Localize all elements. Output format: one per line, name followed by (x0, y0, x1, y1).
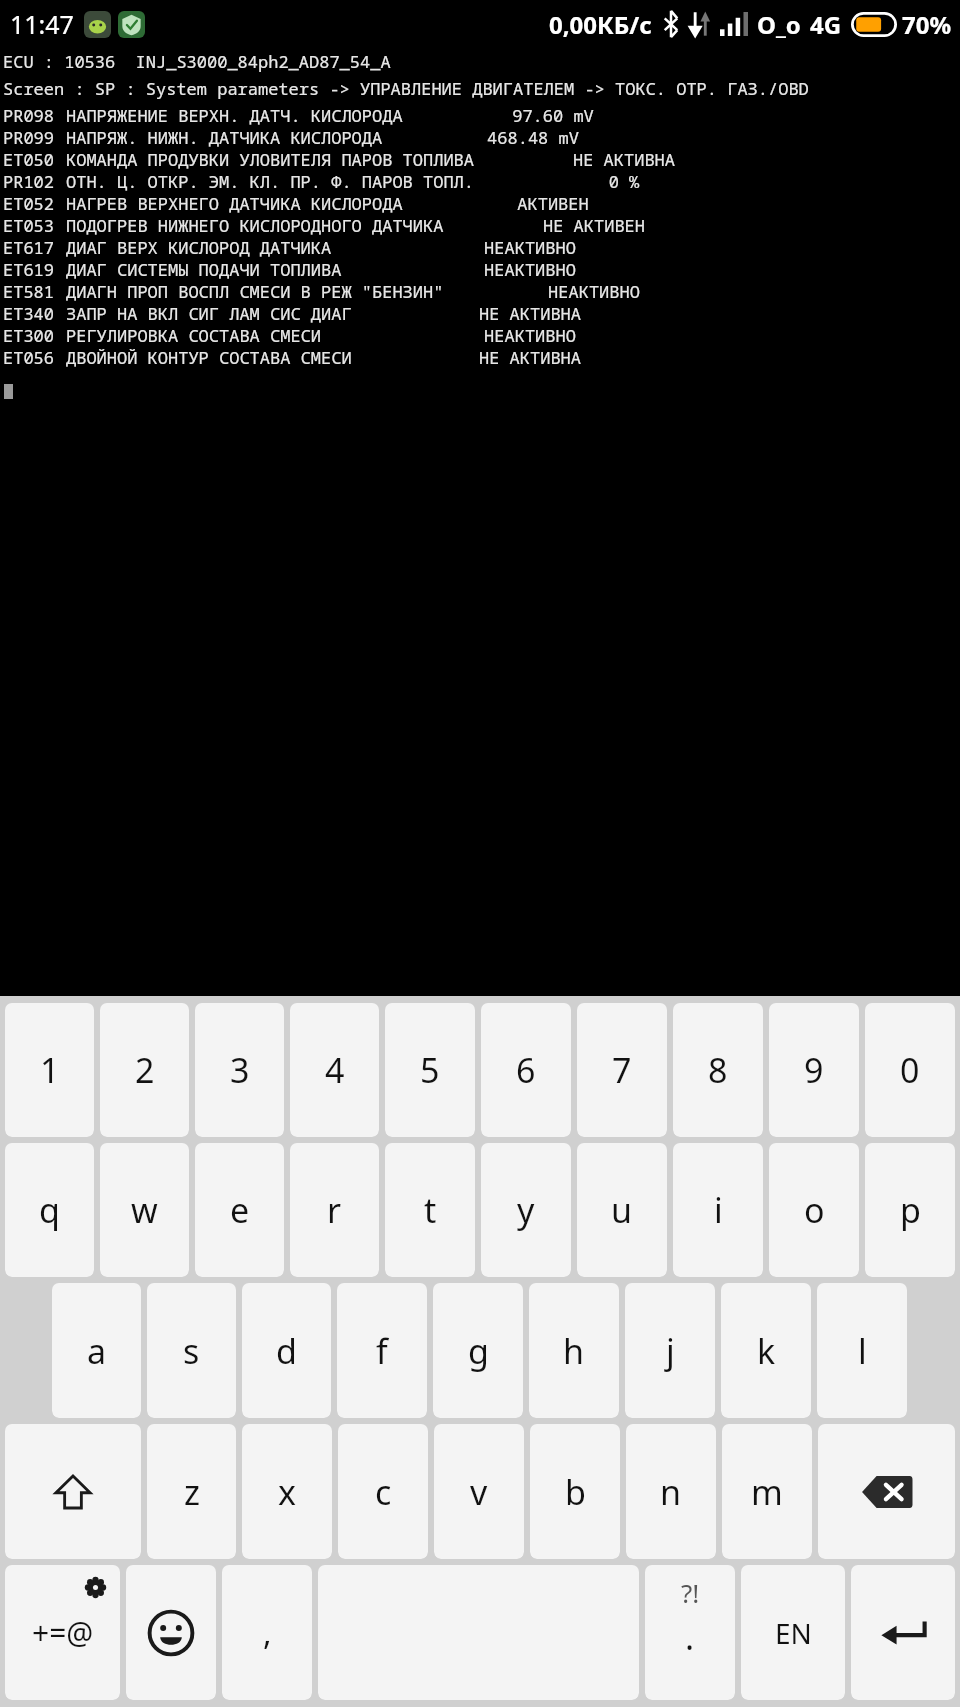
staticText: o (804, 1187, 825, 1233)
button[interactable] (5, 1424, 141, 1559)
button[interactable] (818, 1424, 955, 1559)
button[interactable]: y (481, 1143, 571, 1277)
button[interactable]: 8 (673, 1003, 763, 1137)
staticText: 11:47 (10, 7, 74, 41)
button[interactable]: i (673, 1143, 763, 1277)
staticText: 3 (230, 1047, 250, 1093)
staticText: 8 (708, 1047, 728, 1093)
button[interactable]: p (865, 1143, 955, 1277)
button[interactable]: f (337, 1283, 427, 1418)
other: Enter (848, 1562, 958, 1703)
button[interactable]: l (817, 1283, 907, 1418)
staticText: НАПРЯЖЕНИЕ ВЕРХН. ДАТЧ. КИСЛОРОДА (66, 104, 403, 126)
staticText: s (183, 1328, 200, 1374)
button[interactable]: b (530, 1424, 620, 1559)
button[interactable]: k (721, 1283, 811, 1418)
staticText: ДИАГ СИСТЕМЫ ПОДАЧИ ТОПЛИВА (66, 258, 342, 280)
button[interactable]: d (242, 1283, 331, 1418)
button[interactable]: , (222, 1565, 312, 1700)
staticText: w (131, 1187, 158, 1233)
button[interactable]: e (195, 1143, 284, 1277)
button[interactable]: 4 (290, 1003, 379, 1137)
button[interactable]: q (5, 1143, 94, 1277)
button[interactable] (126, 1565, 216, 1700)
button[interactable]: 1 (5, 1003, 94, 1137)
button[interactable]: n (626, 1424, 716, 1559)
staticText: 0 % (474, 170, 774, 192)
staticText: ECU : 10536 INJ_S3000_84ph2_AD87_54_A (3, 50, 391, 73)
staticText: PR099 (3, 126, 54, 148)
staticText: 97.60 mV (403, 104, 703, 126)
button[interactable]: 5 (385, 1003, 475, 1137)
staticText: ET056 (3, 346, 54, 368)
staticText: ЗАПР НА ВКЛ СИГ ЛАМ СИС ДИАГ (66, 302, 352, 324)
staticText: p (900, 1187, 921, 1233)
staticText: 5 (420, 1047, 440, 1093)
staticText: ET581 (3, 280, 54, 302)
button[interactable] (851, 1565, 955, 1700)
staticText: РЕГУЛИРОВКА СОСТАВА СМЕСИ (66, 324, 321, 346)
button[interactable]: c (338, 1424, 428, 1559)
staticText: ДИАГН ПРОП ВОСПЛ СМЕСИ В РЕЖ "БЕНЗИН" (66, 280, 444, 302)
staticText: ПОДОГРЕВ НИЖНЕГО КИСЛОРОДНОГО ДАТЧИКА (66, 214, 444, 236)
button[interactable]: j (625, 1283, 715, 1418)
staticText: ET340 (3, 302, 54, 324)
staticText: ET619 (3, 258, 54, 280)
button[interactable]: z (147, 1424, 236, 1559)
other: Space (315, 1562, 642, 1703)
button[interactable]: s (147, 1283, 236, 1418)
staticText: ET300 (3, 324, 54, 346)
staticText: ОТН. Ц. ОТКР. ЭМ. КЛ. ПР. Ф. ПАРОВ ТОПЛ. (66, 170, 474, 192)
button[interactable]: a (52, 1283, 141, 1418)
button[interactable]: o (769, 1143, 859, 1277)
button[interactable]: ?! (645, 1565, 735, 1700)
staticText: НАПРЯЖ. НИЖН. ДАТЧИКА КИСЛОРОДА (66, 126, 383, 148)
staticText: y (517, 1187, 535, 1233)
button[interactable]: 0 (865, 1003, 955, 1137)
staticText: c (375, 1469, 392, 1515)
button[interactable]: u (577, 1143, 667, 1277)
button[interactable]: g (433, 1283, 523, 1418)
staticText: z (184, 1469, 200, 1515)
other: Symbols (2, 1562, 123, 1703)
staticText: 9 (804, 1047, 824, 1093)
staticText: 0 (900, 1047, 920, 1093)
staticText: t (424, 1187, 437, 1233)
button[interactable]: h (529, 1283, 619, 1418)
staticText: a (87, 1328, 107, 1374)
staticText: ET050 (3, 148, 54, 170)
staticText: i (714, 1187, 723, 1233)
button[interactable]: t (385, 1143, 475, 1277)
staticText: 468.48 mV (383, 126, 683, 148)
button[interactable]: r (290, 1143, 379, 1277)
staticText: НЕАКТИВНО (444, 280, 744, 302)
button[interactable]: v (434, 1424, 524, 1559)
staticText: PR102 (3, 170, 54, 192)
button[interactable]: w (100, 1143, 189, 1277)
staticText: h (563, 1328, 585, 1374)
staticText: 4 (325, 1047, 345, 1093)
staticText: d (276, 1328, 297, 1374)
button[interactable]: +=@ (5, 1565, 120, 1700)
staticText: Screen : SP : System parameters -> УПРАВ… (3, 77, 809, 100)
staticText: КОМАНДА ПРОДУВКИ УЛОВИТЕЛЯ ПАРОВ ТОПЛИВА (66, 148, 474, 170)
button[interactable]: m (722, 1424, 812, 1559)
staticText: 6 (516, 1047, 536, 1093)
button[interactable]: 2 (100, 1003, 189, 1137)
staticText: +=@ (32, 1612, 94, 1653)
button[interactable]: 3 (195, 1003, 284, 1137)
button[interactable]: 6 (481, 1003, 571, 1137)
staticText: ET052 (3, 192, 54, 214)
button[interactable]: 7 (577, 1003, 667, 1137)
button[interactable]: EN (741, 1565, 845, 1700)
button[interactable]: 9 (769, 1003, 859, 1137)
staticText: j (666, 1328, 675, 1374)
other: Period (642, 1562, 738, 1703)
staticText: g (468, 1328, 489, 1374)
staticText: PR098 (3, 104, 54, 126)
other: Backspace (815, 1421, 958, 1562)
staticText: x (278, 1469, 296, 1515)
other: Shift (2, 1421, 144, 1562)
button[interactable]: x (242, 1424, 332, 1559)
